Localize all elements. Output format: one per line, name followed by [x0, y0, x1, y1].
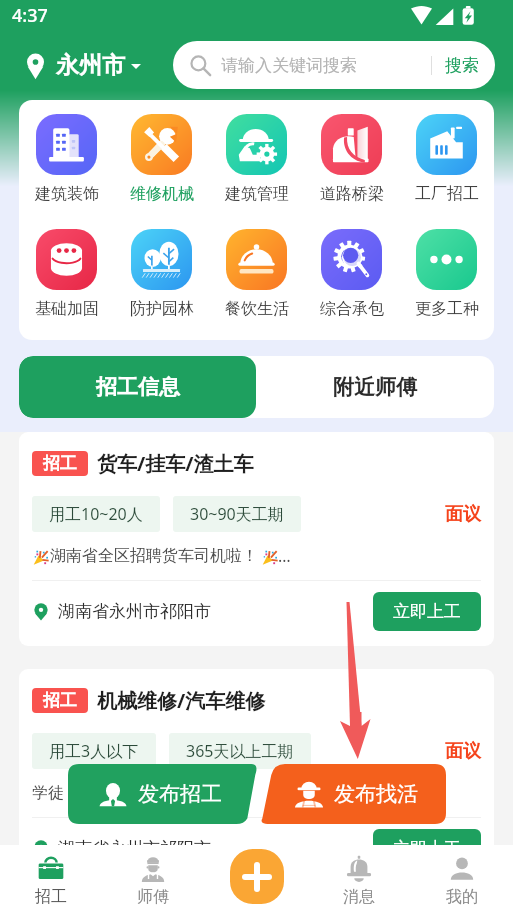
button[interactable]: 发布招工 [68, 764, 259, 824]
staticText: 附近师傅 [333, 374, 417, 400]
button[interactable]: 餐饮生活 [209, 229, 304, 319]
staticText: 请输入关键词搜索 [221, 55, 431, 76]
staticText: 基础加固 [35, 299, 99, 319]
button[interactable]: 防护园林 [114, 229, 209, 319]
staticText: 招工 [43, 690, 77, 711]
staticText: 365天以上工期 [186, 740, 294, 762]
staticText: 30~90天工期 [190, 503, 284, 525]
button[interactable]: 建筑装饰 [19, 114, 114, 204]
button[interactable]: 发布找活 [259, 764, 446, 824]
button[interactable]: 附近师傅 [256, 356, 494, 418]
staticText: 用工3人以下 [49, 740, 139, 762]
staticText: 工厂招工 [415, 184, 479, 204]
staticText: 招工 [43, 453, 77, 474]
button[interactable]: 道路桥梁 [304, 114, 399, 204]
staticText: 学徒 [32, 783, 64, 803]
staticText: 机械维修/汽车维修 [97, 687, 266, 714]
staticText: 建筑管理 [225, 184, 289, 204]
staticText: 搜索 [445, 55, 479, 76]
staticText: 面议 [445, 740, 481, 763]
button[interactable]: 永州市 [24, 51, 141, 80]
staticText: 防护园林 [130, 299, 194, 319]
button[interactable]: 更多工种 [399, 229, 494, 319]
staticText: 建筑装饰 [35, 184, 99, 204]
button[interactable]: 师傅 [102, 845, 204, 914]
staticText: 湖南省永州市祁阳市 [58, 838, 211, 859]
staticText: 发布找活 [334, 781, 418, 807]
staticText: 维修机械 [130, 184, 194, 204]
staticText: 面议 [445, 503, 481, 526]
staticText: 招工 [35, 887, 67, 907]
staticText: … [278, 545, 291, 567]
button[interactable]: 工厂招工 [399, 114, 494, 204]
button[interactable]: 招工信息 [19, 356, 256, 418]
staticText: 我的 [446, 887, 478, 907]
button[interactable]: 招工 [0, 845, 102, 914]
staticText: 永州市 [56, 51, 125, 80]
staticText: 道路桥梁 [320, 184, 384, 204]
staticText: 发布招工 [138, 781, 222, 807]
staticText: 湖南省全区招聘货车司机啦！ [50, 546, 258, 566]
button[interactable]: 请输入关键词搜索 [173, 41, 495, 89]
staticText: 综合承包 [320, 299, 384, 319]
button[interactable]: 基础加固 [19, 229, 114, 319]
staticText: 湖南省永州市祁阳市 [58, 601, 211, 622]
staticText: 立即上工 [393, 838, 461, 859]
button[interactable]: 我的 [410, 845, 513, 914]
staticText: 师傅 [137, 887, 169, 907]
staticText: 消息 [343, 887, 375, 907]
button[interactable]: 立即上工 [373, 829, 481, 868]
button[interactable]: Publish [230, 849, 284, 904]
button[interactable]: 建筑管理 [209, 114, 304, 204]
button[interactable]: 消息 [307, 845, 410, 914]
staticText: 货车/挂车/渣土车 [97, 450, 254, 477]
button[interactable]: 综合承包 [304, 229, 399, 319]
staticText: 更多工种 [415, 299, 479, 319]
button[interactable]: 维修机械 [114, 114, 209, 204]
staticText: 招工信息 [96, 374, 180, 400]
staticText: 餐饮生活 [225, 299, 289, 319]
staticText: 4:37 [12, 3, 48, 28]
staticText: 用工10~20人 [49, 503, 143, 525]
staticText: 立即上工 [393, 601, 461, 622]
button[interactable]: 立即上工 [373, 592, 481, 631]
